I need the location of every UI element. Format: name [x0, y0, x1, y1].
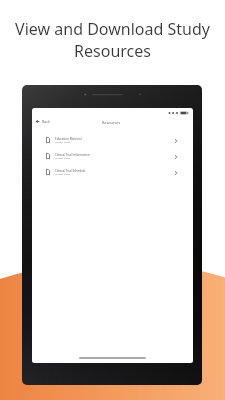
staticText: Content: Survey: [55, 157, 71, 160]
button[interactable]: Education Material: [32, 132, 193, 148]
button[interactable]: Clinical Trial Information: [32, 148, 193, 164]
staticText: Clinical Trial Information: [55, 153, 90, 157]
staticText: Content: Survey: [55, 173, 71, 176]
staticText: Back: [42, 119, 50, 124]
staticText: View and Download Study Resources: [6, 18, 219, 62]
button[interactable]: Clinical Trial Schedule: [32, 164, 193, 180]
staticText: Education Material: [55, 137, 82, 141]
button[interactable]: Back: [34, 117, 52, 126]
staticText: Clinical Trial Schedule: [55, 169, 86, 173]
staticText: Resources: [102, 120, 121, 125]
staticText: Content: Survey: [55, 141, 71, 144]
